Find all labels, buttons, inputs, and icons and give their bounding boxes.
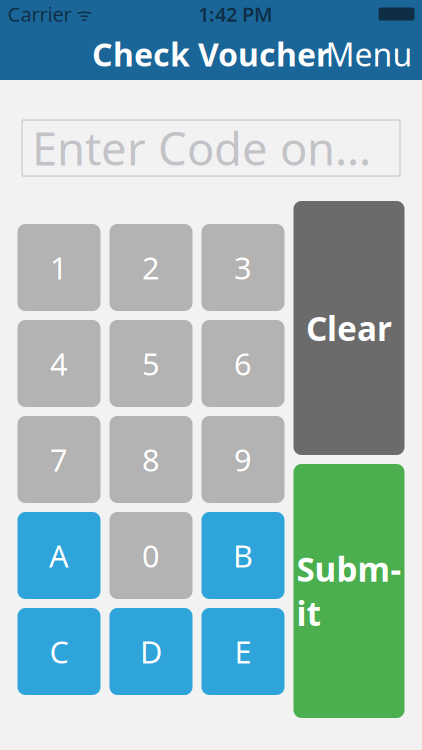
staticText: E [234,631,251,672]
button[interactable]: D [109,608,192,695]
button[interactable]: 2 [109,224,192,311]
staticText: D [140,631,162,672]
button[interactable]: 1 [17,224,100,311]
button[interactable]: Menu [311,23,422,85]
staticText: 3 [234,247,252,288]
staticText: Clear [306,306,392,350]
staticText: 6 [234,343,252,384]
button[interactable]: 8 [109,416,192,503]
button[interactable]: 5 [109,320,192,407]
staticText: 4 [50,343,68,384]
button[interactable]: 3 [201,224,284,311]
staticText: Carrier [7,1,71,27]
staticText: Check Voucher [92,33,330,75]
button[interactable]: A [17,512,100,599]
staticText: 5 [142,343,160,384]
staticText: ᯤ [71,2,92,25]
staticText: Enter Code on... [32,118,371,178]
staticText: A [49,535,69,576]
staticText: 1 [50,247,68,288]
button[interactable]: 4 [17,320,100,407]
button[interactable]: B [201,512,284,599]
button[interactable]: 6 [201,320,284,407]
staticText: Submit [296,547,401,635]
staticText: C [49,631,68,672]
staticText: 1:42 PM [198,1,273,27]
button[interactable]: E [201,608,284,695]
staticText: 7 [50,439,68,480]
staticText: 9 [234,439,252,480]
button[interactable]: 7 [17,416,100,503]
staticText: Menu [325,33,412,75]
staticText: 2 [142,247,160,288]
button[interactable]: 9 [201,416,284,503]
staticText: B [233,535,253,576]
button[interactable]: 0 [109,512,192,599]
staticText: 8 [142,439,160,480]
button[interactable]: Submit [293,464,404,718]
staticText: 0 [142,535,160,576]
button[interactable]: C [17,608,100,695]
button[interactable]: Clear [293,201,404,455]
